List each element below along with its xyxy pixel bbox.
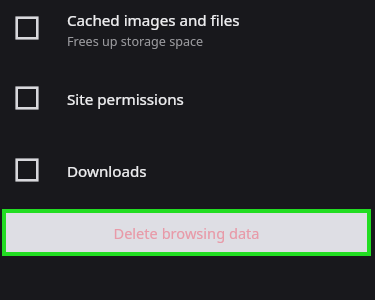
button[interactable]: Downloads: [0, 142, 375, 200]
staticText: Frees up storage space: [67, 33, 204, 50]
button[interactable]: Delete browsing data: [6, 213, 367, 252]
other: Site permissions: [14, 85, 40, 111]
staticText: Downloads: [67, 161, 147, 182]
other: Cached images and files: [14, 15, 40, 41]
other: Downloads: [14, 157, 40, 183]
button[interactable]: Cached images and files: [0, 0, 375, 70]
staticText: Cached images and files: [67, 10, 240, 31]
staticText: Delete browsing data: [113, 223, 260, 243]
staticText: Site permissions: [67, 89, 184, 110]
button[interactable]: Site permissions: [0, 70, 375, 140]
